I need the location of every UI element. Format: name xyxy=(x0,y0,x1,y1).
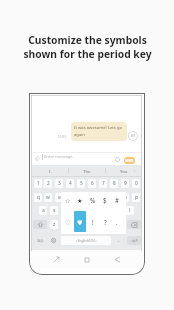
staticText: SEND xyxy=(125,159,134,163)
staticText: % xyxy=(90,196,96,204)
button[interactable]: Recents xyxy=(51,254,62,265)
button[interactable]: ♡ xyxy=(62,216,74,228)
staticText: w xyxy=(46,194,50,201)
button[interactable]: Emoji xyxy=(115,157,120,162)
button[interactable]: Shift xyxy=(33,220,47,229)
button[interactable]: u xyxy=(99,193,107,202)
button[interactable]: t xyxy=(77,193,85,202)
staticText: ♥ xyxy=(77,219,83,226)
staticText: r xyxy=(69,194,71,201)
staticText: 6 xyxy=(91,180,94,187)
staticText: . xyxy=(116,218,118,226)
button[interactable]: 2 xyxy=(44,179,52,188)
button[interactable]: ♥ xyxy=(74,216,86,228)
button[interactable]: 7 xyxy=(99,179,107,188)
button[interactable]: Backspace xyxy=(127,220,141,229)
staticText: 1 xyxy=(37,180,40,187)
button[interactable]: It was awesome! Lets go again xyxy=(71,122,127,141)
button[interactable]: Home xyxy=(81,254,92,265)
staticText: y xyxy=(91,194,94,201)
button[interactable]: 1 xyxy=(34,179,42,188)
button[interactable]: p xyxy=(132,193,140,202)
button[interactable]: I xyxy=(31,165,68,176)
staticText: Enter message xyxy=(44,154,73,160)
staticText: !#☺ xyxy=(37,238,44,243)
button[interactable]: g xyxy=(83,206,91,215)
staticText: 7 xyxy=(102,180,105,187)
button[interactable]: n xyxy=(104,220,112,229)
staticText: You xyxy=(120,168,128,174)
staticText: 0 xyxy=(135,180,138,187)
button[interactable]: 9 xyxy=(121,179,129,188)
staticText: s xyxy=(53,207,56,214)
button[interactable]: m xyxy=(115,220,123,229)
button[interactable]: % xyxy=(87,194,99,206)
staticText: a xyxy=(42,207,45,214)
button[interactable]: 3 xyxy=(55,179,63,188)
staticText: t xyxy=(80,194,82,201)
button[interactable]: ☆ xyxy=(62,194,74,206)
staticText: u xyxy=(102,194,105,201)
staticText: 11:03 xyxy=(58,135,66,139)
staticText: $ xyxy=(103,196,107,204)
button[interactable]: i xyxy=(110,193,118,202)
button[interactable]: # xyxy=(111,194,123,206)
button[interactable]: ★ xyxy=(74,194,86,206)
button[interactable]: . xyxy=(111,216,123,228)
button[interactable]: x xyxy=(61,220,69,229)
staticText: x xyxy=(64,221,67,228)
button[interactable]: r xyxy=(66,193,74,202)
staticText: o xyxy=(124,194,127,201)
staticText: # xyxy=(115,196,119,204)
button[interactable]: Back xyxy=(112,254,123,265)
button[interactable]: You xyxy=(105,165,142,176)
button[interactable]: y xyxy=(88,193,96,202)
button[interactable]: 5 xyxy=(77,179,85,188)
button[interactable]: Period xyxy=(113,236,125,245)
button[interactable]: Heart symbol xyxy=(74,211,86,232)
button[interactable]: Settings xyxy=(47,236,59,245)
staticText: m xyxy=(117,221,122,228)
staticText: e xyxy=(58,194,61,201)
button[interactable]: ! xyxy=(87,216,99,228)
button[interactable]: 0 xyxy=(132,179,140,188)
staticText: . xyxy=(118,237,120,244)
button[interactable]: Enter xyxy=(127,236,141,245)
button[interactable]: q xyxy=(34,193,42,202)
button[interactable]: SEND xyxy=(124,157,135,164)
staticText: 9 xyxy=(124,180,127,187)
button[interactable]: f xyxy=(72,206,80,215)
button[interactable]: e xyxy=(55,193,63,202)
staticText: p xyxy=(135,194,138,201)
button[interactable]: 6 xyxy=(88,179,96,188)
button[interactable]: l xyxy=(126,206,134,215)
staticText: c xyxy=(75,221,78,228)
button[interactable]: 8 xyxy=(110,179,118,188)
staticText: It was awesome! Lets go again xyxy=(74,125,123,137)
button[interactable]: b xyxy=(93,220,101,229)
button[interactable]: $ xyxy=(99,194,111,206)
button[interactable]: v xyxy=(83,220,91,229)
staticText: l xyxy=(129,207,131,214)
button[interactable]: ? xyxy=(99,216,111,228)
button[interactable]: z xyxy=(50,220,58,229)
button[interactable]: ‹ English(US) › xyxy=(61,236,111,245)
staticText: 3 xyxy=(58,180,61,187)
button[interactable]: 4 xyxy=(66,179,74,188)
button[interactable]: c xyxy=(72,220,80,229)
button[interactable]: s xyxy=(50,206,58,215)
button[interactable]: o xyxy=(121,193,129,202)
button[interactable]: w xyxy=(44,193,52,202)
button[interactable]: The xyxy=(68,165,105,176)
button[interactable]: a xyxy=(39,206,47,215)
button[interactable]: Symbols xyxy=(33,236,47,245)
